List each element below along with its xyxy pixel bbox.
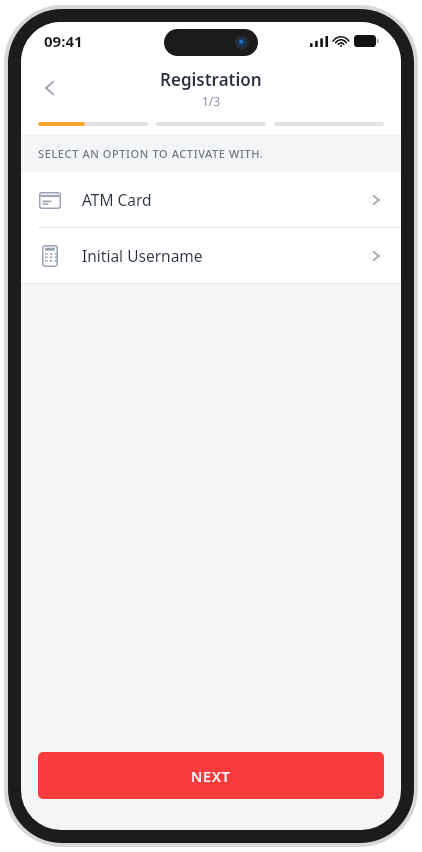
staticText: 09:41 <box>44 31 83 51</box>
staticText: Initial Username <box>82 245 203 266</box>
staticText: NEXT <box>191 766 231 786</box>
staticText: 1/3 <box>202 93 221 109</box>
button[interactable]: Back <box>29 67 71 109</box>
staticText: SELECT AN OPTION TO ACTIVATE WITH. <box>38 146 264 161</box>
button[interactable]: NEXT <box>38 752 384 799</box>
staticText: Registration <box>160 68 262 91</box>
button[interactable]: Initial Username <box>21 228 401 283</box>
staticText: ATM Card <box>82 189 152 210</box>
button[interactable]: ATM Card <box>21 172 401 227</box>
